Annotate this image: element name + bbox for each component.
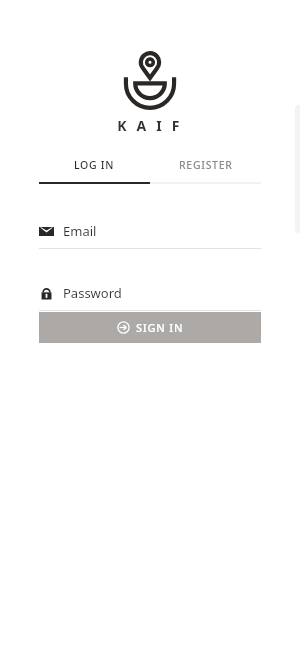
staticText: REGISTER — [179, 158, 233, 172]
staticText: SIGN IN — [136, 320, 184, 335]
other: Password — [39, 286, 54, 301]
button[interactable]: REGISTER — [150, 152, 261, 178]
staticText: Password — [63, 284, 122, 302]
button[interactable]: Password — [39, 284, 261, 311]
button[interactable]: LOG IN — [39, 152, 150, 178]
other: Email — [39, 224, 54, 239]
staticText: Email — [63, 222, 97, 240]
staticText: LOG IN — [74, 158, 115, 172]
button[interactable]: SIGN IN — [39, 312, 261, 343]
button[interactable]: Email — [39, 222, 261, 249]
staticText: K A I F — [0, 116, 300, 135]
